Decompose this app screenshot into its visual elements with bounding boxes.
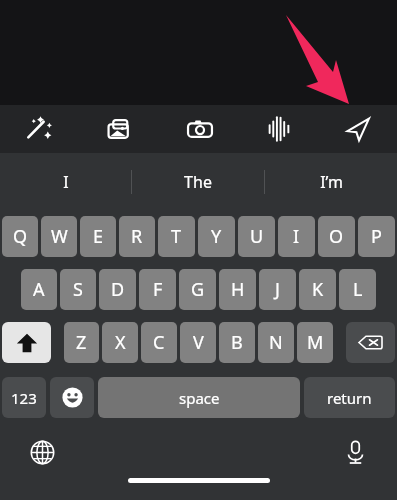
button[interactable]: 123 (2, 377, 46, 418)
staticText: I’m (320, 171, 343, 193)
button[interactable]: Y (198, 216, 235, 257)
staticText: N (269, 330, 283, 355)
button[interactable]: J (259, 269, 296, 310)
button[interactable]: Send (318, 105, 397, 153)
staticText: T (171, 224, 182, 249)
staticText: A (33, 277, 45, 302)
button[interactable]: P (358, 216, 395, 257)
button[interactable]: I’m (265, 153, 397, 211)
button[interactable]: L (339, 269, 376, 310)
staticText: H (231, 277, 245, 302)
button[interactable]: F (139, 269, 176, 310)
button[interactable]: U (238, 216, 275, 257)
button[interactable]: B (219, 322, 255, 363)
button[interactable]: Effects (0, 105, 80, 153)
button[interactable]: X (102, 322, 138, 363)
button[interactable]: E (80, 216, 116, 257)
button[interactable]: Audio message (239, 105, 318, 153)
staticText: E (93, 224, 104, 249)
staticText: space (179, 388, 220, 408)
button[interactable]: K (299, 269, 336, 310)
staticText: F (153, 277, 163, 302)
button[interactable]: C (141, 322, 177, 363)
button[interactable]: return (304, 377, 395, 418)
staticText: I (293, 224, 300, 249)
button[interactable]: R (119, 216, 155, 257)
staticText: L (353, 277, 363, 302)
button[interactable]: N (258, 322, 294, 363)
staticText: X (115, 330, 126, 355)
staticText: return (327, 388, 372, 408)
staticText: M (307, 330, 324, 355)
button[interactable]: Next keyboard (22, 432, 62, 472)
button[interactable]: S (60, 269, 96, 310)
button[interactable]: I (278, 216, 315, 257)
button[interactable]: I (0, 153, 131, 211)
staticText: W (51, 224, 68, 249)
button[interactable]: H (219, 269, 256, 310)
button[interactable]: A (21, 269, 57, 310)
button[interactable]: Z (64, 322, 99, 363)
button[interactable]: V (180, 322, 216, 363)
staticText: Z (76, 330, 87, 355)
staticText: D (111, 277, 125, 302)
staticText: Q (13, 224, 28, 249)
staticText: 123 (11, 388, 37, 408)
staticText: P (371, 224, 382, 249)
button[interactable]: space (98, 377, 300, 418)
button[interactable]: Photos (80, 105, 160, 153)
staticText: O (329, 224, 344, 249)
button[interactable]: G (179, 269, 216, 310)
staticText: The (184, 171, 212, 193)
button[interactable]: Shift (2, 322, 51, 363)
button[interactable]: Backspace (346, 322, 395, 363)
staticText: S (73, 277, 83, 302)
button[interactable]: O (318, 216, 355, 257)
staticText: J (275, 277, 280, 302)
staticText: I (63, 171, 69, 193)
staticText: Y (211, 224, 222, 249)
staticText: C (153, 330, 165, 355)
staticText: R (131, 224, 143, 249)
staticText: B (231, 330, 243, 355)
button[interactable]: Camera (160, 105, 239, 153)
button[interactable]: W (41, 216, 77, 257)
button[interactable]: M (297, 322, 333, 363)
staticText: U (250, 224, 264, 249)
staticText: K (312, 277, 324, 302)
button[interactable]: Emoji (50, 377, 94, 418)
button[interactable]: Q (2, 216, 38, 257)
staticText: V (193, 330, 204, 355)
button[interactable]: The (132, 153, 264, 211)
button[interactable]: Dictate (335, 432, 375, 472)
button[interactable]: T (158, 216, 195, 257)
staticText: G (191, 277, 205, 302)
button[interactable]: D (99, 269, 136, 310)
